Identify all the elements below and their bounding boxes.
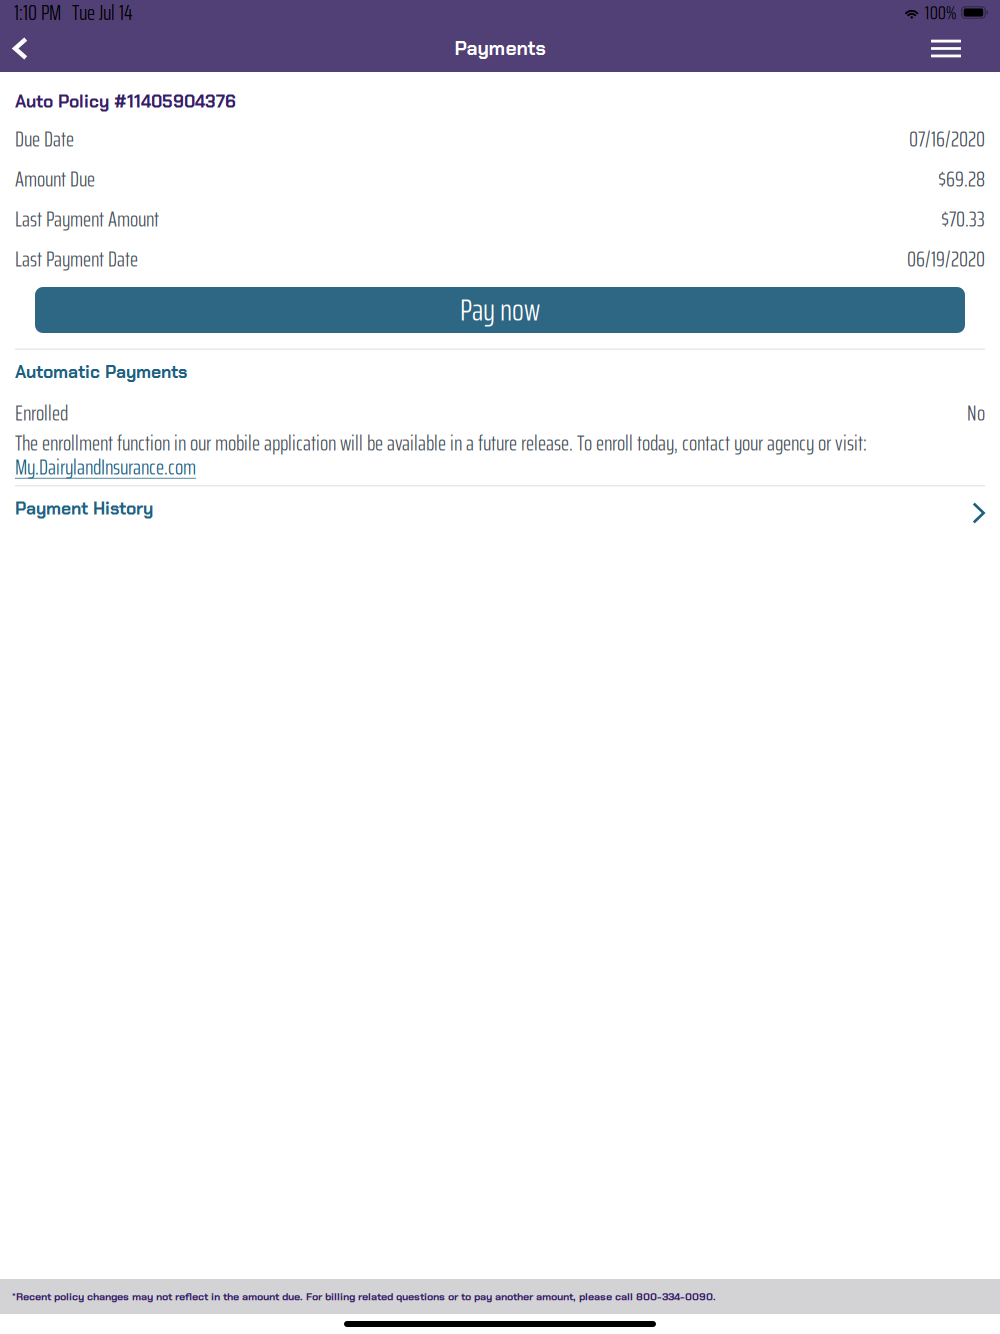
staticText: 07/16/2020 — [909, 122, 985, 156]
staticText: 100% — [925, 0, 957, 28]
staticText: Amount Due — [15, 162, 95, 196]
staticText: $69.28 — [938, 162, 985, 196]
staticText: *Recent policy changes may not reflect i… — [12, 1290, 716, 1303]
button[interactable]: Payment History — [15, 486, 985, 530]
staticText: Payment History — [15, 497, 153, 520]
staticText: Due Date — [15, 122, 74, 156]
staticText: Enrolled — [15, 396, 68, 430]
button[interactable]: My.DairylandInsurance.com — [15, 450, 196, 484]
staticText: Last Payment Amount — [15, 202, 159, 236]
staticText: No — [967, 396, 985, 430]
staticText: The enrollment function in our mobile ap… — [15, 426, 867, 460]
staticText: Tue Jul 14 — [72, 0, 133, 29]
staticText: Last Payment Date — [15, 242, 138, 276]
staticText: 06/19/2020 — [907, 242, 985, 276]
staticText: My.DairylandInsurance.com — [15, 450, 196, 484]
staticText: Pay now — [460, 286, 540, 334]
button[interactable]: Back — [0, 26, 46, 70]
staticText: $70.33 — [941, 202, 985, 236]
button[interactable]: Menu — [911, 26, 1000, 70]
button[interactable]: Pay now — [35, 287, 965, 333]
staticText: Automatic Payments — [15, 361, 187, 383]
staticText: Payments — [454, 36, 545, 61]
staticText: Auto Policy #11405904376 — [15, 90, 236, 113]
staticText: 1:10 PM — [14, 0, 61, 29]
